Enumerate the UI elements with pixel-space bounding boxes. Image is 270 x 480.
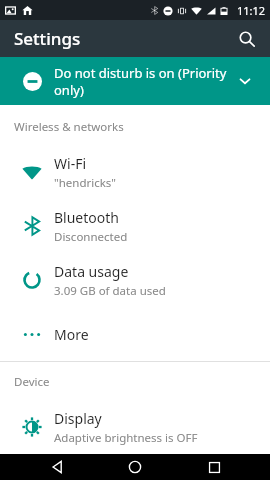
staticText: Do not disturb is on (Priority only): [54, 64, 230, 99]
button[interactable]: Expand: [230, 66, 260, 96]
staticText: Bluetooth: [54, 208, 119, 227]
button[interactable]: Wi-Fi: [0, 145, 270, 199]
button[interactable]: Recent apps: [192, 454, 236, 480]
button[interactable]: Search: [232, 24, 262, 54]
button[interactable]: More: [0, 307, 270, 361]
staticText: Disconnected: [54, 229, 128, 245]
staticText: Settings: [14, 27, 81, 50]
staticText: Display: [54, 409, 102, 428]
button[interactable]: Back: [35, 454, 79, 480]
staticText: Wi-Fi: [54, 154, 87, 173]
staticText: Wireless & networks: [14, 119, 270, 135]
staticText: More: [54, 325, 89, 344]
staticText: Data usage: [54, 262, 129, 281]
staticText: Adaptive brightness is OFF: [54, 430, 198, 446]
button[interactable]: Do not disturb is on (Priority only): [0, 57, 270, 105]
button[interactable]: Display: [0, 400, 270, 454]
staticText: 3.09 GB of data used: [54, 283, 166, 299]
staticText: 11:12: [237, 3, 266, 18]
staticText: "hendricks": [54, 175, 117, 191]
button[interactable]: Data usage: [0, 253, 270, 307]
button[interactable]: Bluetooth: [0, 199, 270, 253]
staticText: Device: [14, 374, 270, 390]
button[interactable]: Home: [113, 454, 157, 480]
